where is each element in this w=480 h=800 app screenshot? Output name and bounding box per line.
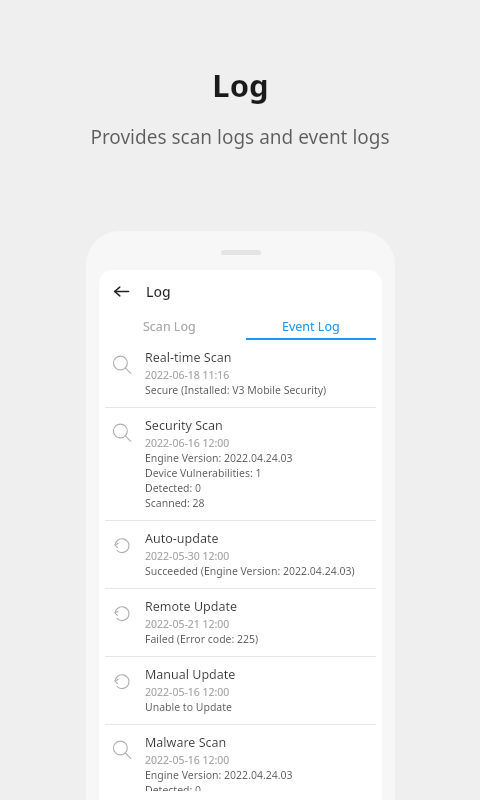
- staticText: Engine Version: 2022.04.24.03: [145, 451, 293, 465]
- button[interactable]: Auto-update: [99, 521, 382, 588]
- staticText: 2022-05-16 12:00: [145, 753, 230, 767]
- staticText: Security Scan: [145, 417, 223, 434]
- staticText: 2022-05-30 12:00: [145, 549, 230, 563]
- staticText: Real-time Scan: [145, 349, 232, 366]
- staticText: Event Log: [282, 318, 340, 335]
- button[interactable]: Manual Update: [99, 657, 382, 724]
- staticText: 2022-05-21 12:00: [145, 617, 230, 631]
- button[interactable]: Security Scan: [99, 408, 382, 520]
- button[interactable]: Back: [105, 275, 137, 307]
- staticText: Scan Log: [143, 318, 196, 335]
- staticText: Engine Version: 2022.04.24.03: [145, 768, 293, 782]
- staticText: 2022-06-16 12:00: [145, 436, 230, 450]
- button[interactable]: Real-time Scan: [99, 340, 382, 407]
- staticText: Log: [212, 64, 269, 106]
- staticText: Manual Update: [145, 666, 236, 683]
- button[interactable]: Malware Scan: [99, 725, 382, 800]
- staticText: Succeeded (Engine Version: 2022.04.24.03…: [145, 564, 355, 578]
- staticText: Failed (Error code: 225): [145, 632, 259, 646]
- staticText: Auto-update: [145, 530, 219, 547]
- staticText: Device Vulnerabilities: 1: [145, 466, 262, 480]
- staticText: Malware Scan: [145, 734, 227, 751]
- button[interactable]: Scan Log: [99, 312, 240, 340]
- button[interactable]: Event Log: [240, 312, 382, 340]
- button[interactable]: Remote Update: [99, 589, 382, 656]
- staticText: Log: [146, 282, 171, 301]
- staticText: Remote Update: [145, 598, 237, 615]
- staticText: 2022-05-16 12:00: [145, 685, 230, 699]
- staticText: 2022-06-18 11:16: [145, 368, 230, 382]
- staticText: Detected: 0: [145, 783, 202, 791]
- staticText: Secure (Installed: V3 Mobile Security): [145, 383, 327, 397]
- staticText: Detected: 0: [145, 481, 202, 495]
- staticText: Provides scan logs and event logs: [90, 124, 390, 150]
- staticText: Scanned: 28: [145, 496, 205, 510]
- staticText: Unable to Update: [145, 700, 232, 714]
